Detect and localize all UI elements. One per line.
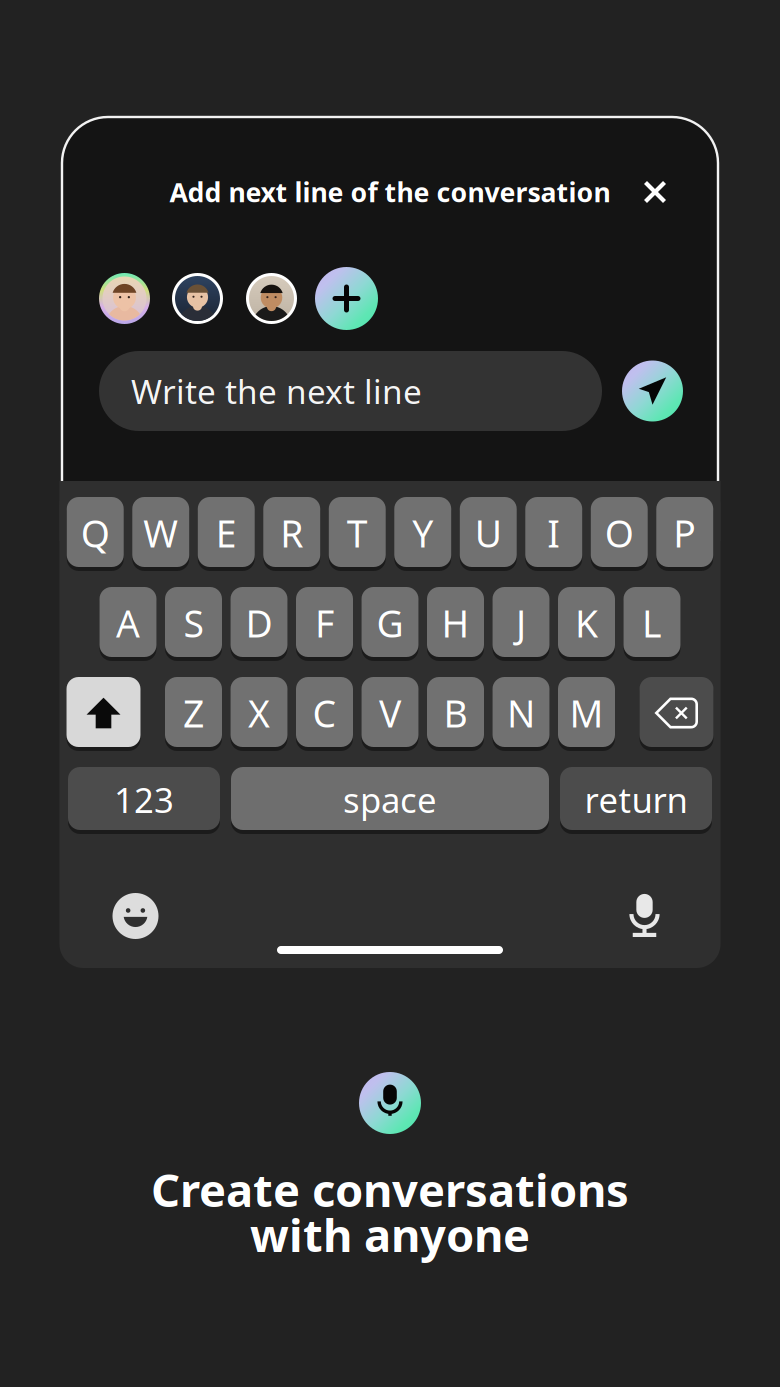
button[interactable]: B	[427, 678, 484, 748]
staticText: O	[605, 508, 634, 558]
button[interactable]: C	[296, 678, 353, 748]
staticText: A	[116, 598, 140, 648]
staticText: H	[441, 598, 469, 648]
button[interactable]: I	[525, 498, 582, 568]
button[interactable]: Shift	[66, 678, 140, 748]
button[interactable]: space	[231, 768, 549, 831]
staticText: D	[245, 598, 272, 648]
button[interactable]: Delete	[639, 678, 713, 748]
button[interactable]: J	[492, 588, 549, 658]
button[interactable]: V	[361, 678, 418, 748]
staticText: U	[475, 508, 502, 558]
staticText: Q	[81, 508, 110, 558]
staticText: Write the next line	[131, 369, 422, 413]
staticText: 123	[114, 776, 174, 822]
button[interactable]: Q	[67, 498, 124, 568]
button[interactable]: L	[623, 588, 680, 658]
button[interactable]: P	[656, 498, 713, 568]
button[interactable]: W	[132, 498, 189, 568]
staticText: Y	[412, 508, 433, 558]
button[interactable]: Y	[394, 498, 451, 568]
button[interactable]: F	[296, 588, 353, 658]
button[interactable]: return	[560, 768, 712, 831]
button[interactable]: Dictate	[616, 888, 672, 944]
staticText: I	[547, 508, 560, 558]
button[interactable]: R	[263, 498, 320, 568]
staticText: R	[280, 508, 303, 558]
button[interactable]: Send	[622, 360, 683, 421]
button[interactable]: E	[198, 498, 255, 568]
staticText: L	[642, 598, 662, 648]
staticText: with anyone	[250, 1204, 530, 1265]
button[interactable]: O	[591, 498, 648, 568]
button[interactable]: A	[99, 588, 156, 658]
button[interactable]: H	[427, 588, 484, 658]
staticText: E	[216, 508, 237, 558]
staticText: B	[443, 688, 467, 738]
button[interactable]: D	[230, 588, 287, 658]
staticText: F	[315, 598, 334, 648]
staticText: J	[516, 598, 526, 648]
staticText: return	[584, 776, 687, 822]
button[interactable]: 123	[68, 768, 220, 831]
staticText: C	[312, 688, 336, 738]
staticText: V	[379, 688, 401, 738]
button[interactable]: Z	[165, 678, 222, 748]
staticText: W	[143, 508, 178, 558]
staticText: G	[376, 598, 403, 648]
staticText: P	[673, 508, 696, 558]
button[interactable]: S	[165, 588, 222, 658]
staticText: space	[343, 776, 437, 822]
button[interactable]: Add person	[315, 267, 378, 330]
staticText: S	[183, 598, 203, 648]
staticText: Add next line of the conversation	[169, 174, 610, 210]
button[interactable]: U	[460, 498, 517, 568]
staticText: Create conversations	[151, 1159, 629, 1220]
staticText: N	[507, 688, 535, 738]
button[interactable]: K	[558, 588, 615, 658]
button[interactable]: Write the next line	[99, 351, 602, 431]
button[interactable]: Close	[632, 169, 678, 215]
staticText: T	[347, 508, 368, 558]
staticText: Z	[183, 688, 204, 738]
button[interactable]: N	[492, 678, 549, 748]
button[interactable]: G	[361, 588, 418, 658]
button[interactable]: M	[558, 678, 615, 748]
staticText: X	[248, 688, 270, 738]
button[interactable]: T	[329, 498, 386, 568]
button[interactable]: X	[230, 678, 287, 748]
staticText: K	[575, 598, 598, 648]
staticText: M	[569, 688, 603, 738]
button[interactable]: Emoji	[107, 888, 163, 944]
